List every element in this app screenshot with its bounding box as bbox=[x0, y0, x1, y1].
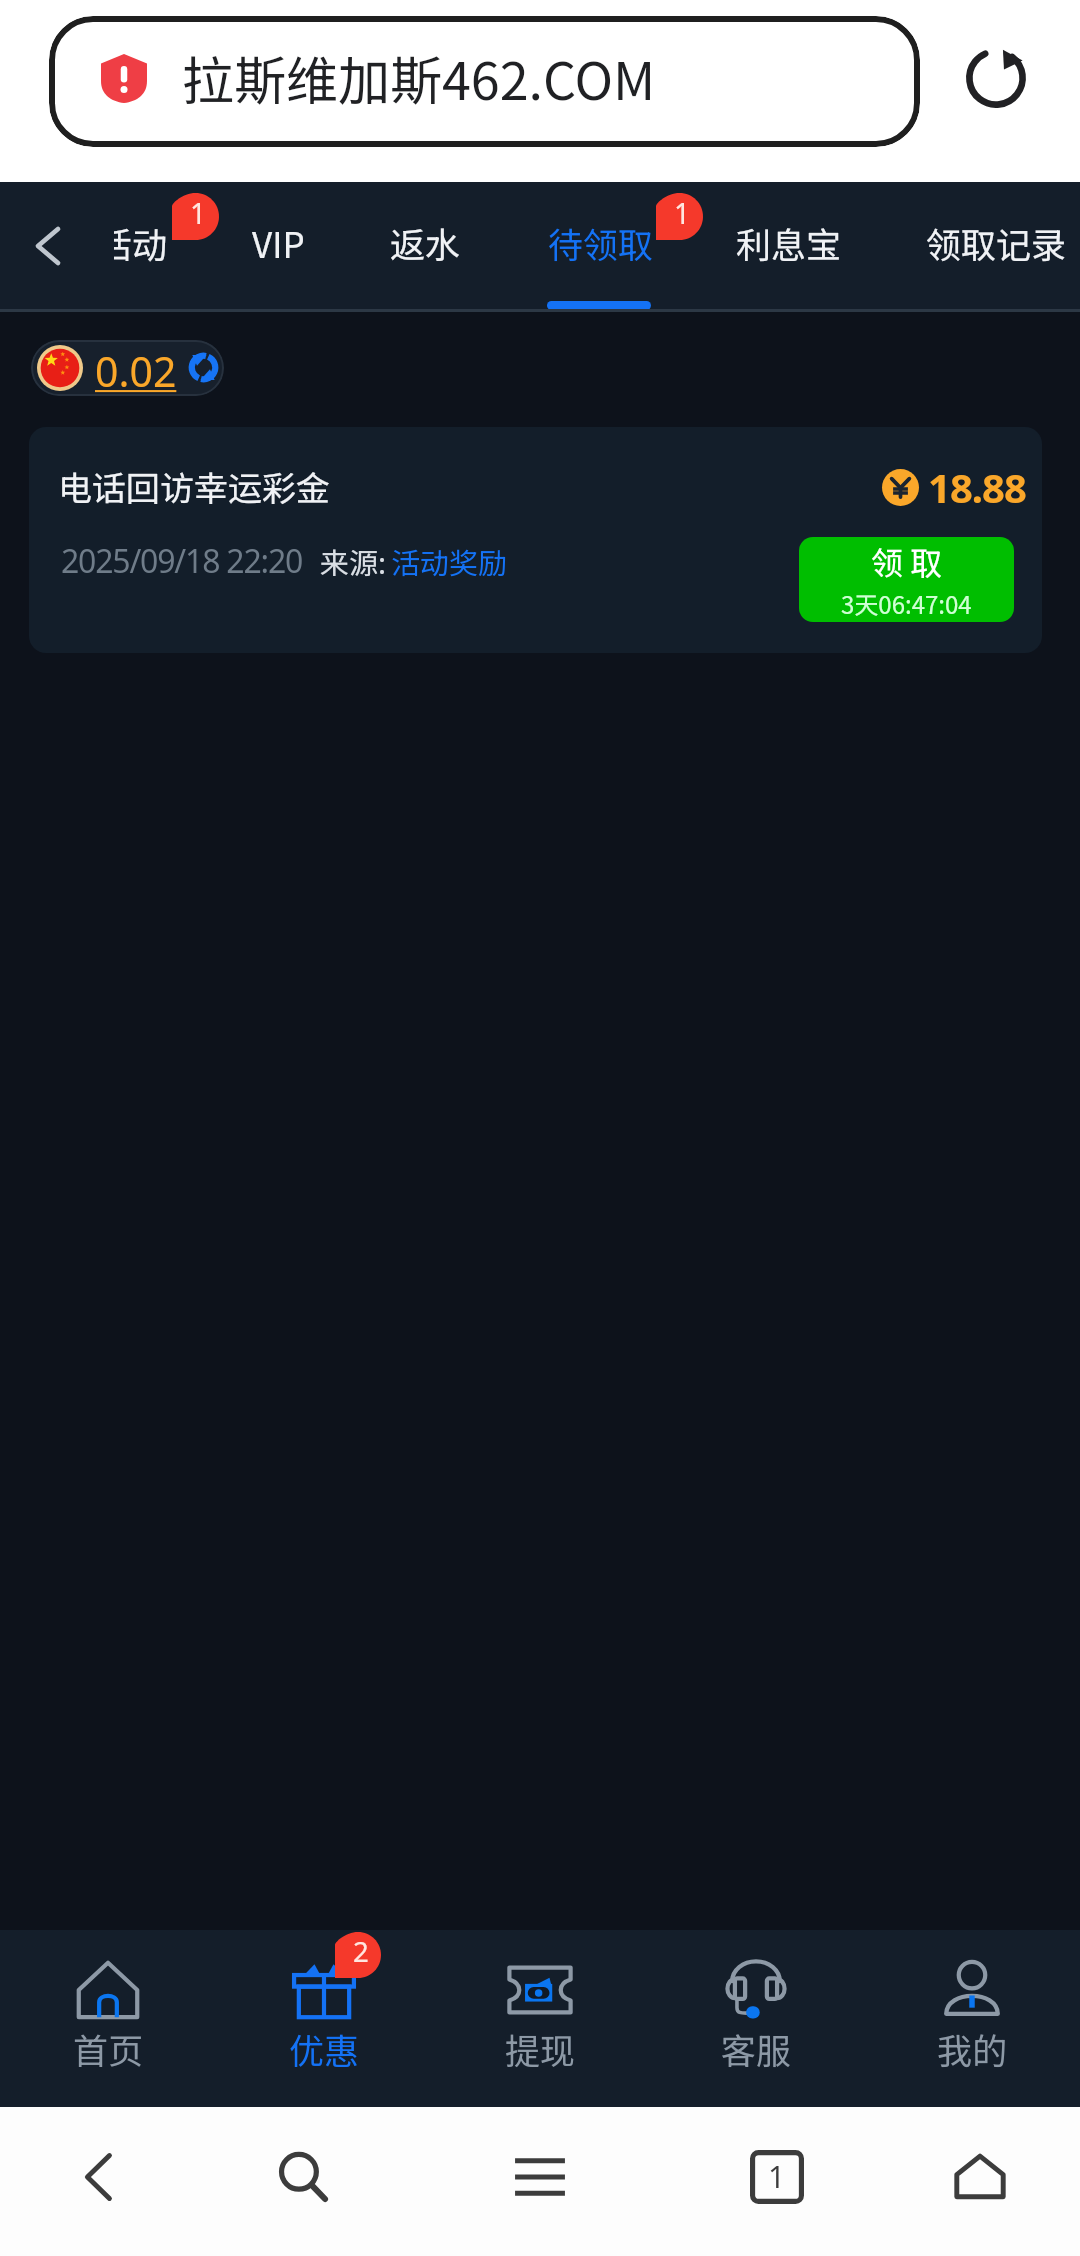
staticText: 1 bbox=[190, 194, 207, 232]
button[interactable]: 领取记录 bbox=[926, 182, 1067, 309]
staticText: 客服 bbox=[721, 2023, 792, 2074]
button[interactable]: 待领取 bbox=[548, 182, 654, 309]
button[interactable]: 0.02 bbox=[31, 340, 224, 396]
button[interactable]: 提现 bbox=[432, 1930, 648, 2107]
staticText: 2025/09/18 22:20 bbox=[61, 539, 303, 583]
staticText: 来源: bbox=[320, 540, 387, 582]
staticText: 提现 bbox=[505, 2023, 576, 2074]
staticText: 1 bbox=[674, 194, 691, 232]
button[interactable]: 电话回访幸运彩金 bbox=[29, 427, 1042, 653]
staticText: 3天06:47:04 bbox=[841, 586, 972, 621]
button[interactable]: 拉斯维加斯462.COM bbox=[49, 16, 920, 147]
button[interactable]: Menu bbox=[492, 2107, 588, 2256]
staticText: 领取记录 bbox=[926, 217, 1067, 268]
staticText: 电话回访幸运彩金 bbox=[58, 462, 330, 511]
button[interactable]: Reload bbox=[951, 33, 1041, 123]
button[interactable]: Tabs bbox=[729, 2107, 825, 2256]
staticText: 优惠 bbox=[289, 2023, 360, 2074]
staticText: 利息宝 bbox=[736, 217, 842, 268]
button[interactable]: Back bbox=[18, 216, 78, 276]
staticText: 活动 bbox=[97, 217, 168, 268]
button[interactable]: 2 bbox=[216, 1930, 432, 2107]
staticText: 2 bbox=[353, 1932, 369, 1970]
button[interactable]: VIP bbox=[252, 182, 305, 309]
staticText: 1 bbox=[768, 2156, 786, 2197]
button[interactable]: Back bbox=[51, 2107, 147, 2256]
staticText: VIP bbox=[252, 217, 305, 268]
staticText: 首页 bbox=[73, 2023, 144, 2074]
staticText: 0.02 bbox=[95, 343, 177, 396]
staticText: 18.88 bbox=[928, 460, 1026, 514]
button[interactable]: 返水 bbox=[390, 182, 461, 309]
button[interactable]: 客服 bbox=[648, 1930, 864, 2107]
button[interactable]: 首页 bbox=[0, 1930, 216, 2107]
staticText: 我的 bbox=[937, 2023, 1008, 2074]
staticText: 待领取 bbox=[548, 217, 654, 268]
button[interactable]: 利息宝 bbox=[736, 182, 842, 309]
staticText: 拉斯维加斯462.COM bbox=[182, 40, 656, 115]
button[interactable]: 活动 bbox=[97, 182, 168, 309]
button[interactable]: 我的 bbox=[864, 1930, 1080, 2107]
staticText: 活动奖励 bbox=[391, 540, 508, 582]
button[interactable]: Search bbox=[255, 2107, 351, 2256]
button[interactable]: Home bbox=[932, 2107, 1028, 2256]
staticText: 返水 bbox=[390, 217, 461, 268]
staticText: 领 取 bbox=[871, 538, 943, 584]
button[interactable]: 领 取 bbox=[799, 537, 1014, 622]
